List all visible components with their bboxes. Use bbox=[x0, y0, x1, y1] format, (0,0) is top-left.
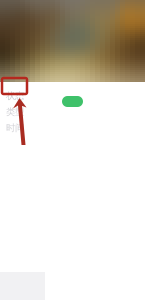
button[interactable]: 类型 bbox=[0, 104, 145, 120]
staticText: 状态 bbox=[6, 90, 24, 102]
button[interactable]: 时间 bbox=[0, 120, 145, 136]
button[interactable]: 状态 bbox=[0, 88, 145, 104]
staticText: 时间 bbox=[6, 122, 24, 134]
staticText: 类型 bbox=[6, 106, 24, 118]
